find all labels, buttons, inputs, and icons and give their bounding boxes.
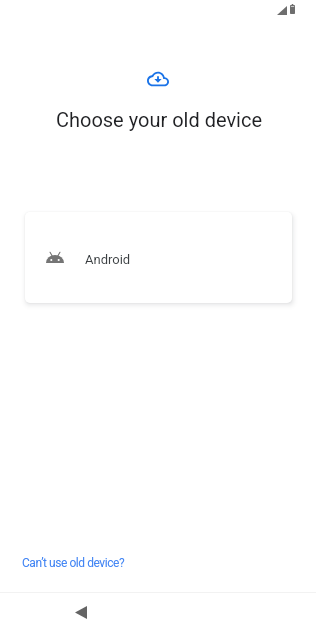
staticText: Choose your old device xyxy=(1,108,316,131)
button[interactable]: Android xyxy=(25,212,292,303)
button[interactable]: Back xyxy=(69,600,93,624)
staticText: Can’t use old device? xyxy=(22,556,125,570)
button[interactable]: Can’t use old device? xyxy=(14,548,133,578)
staticText: Android xyxy=(85,252,131,267)
